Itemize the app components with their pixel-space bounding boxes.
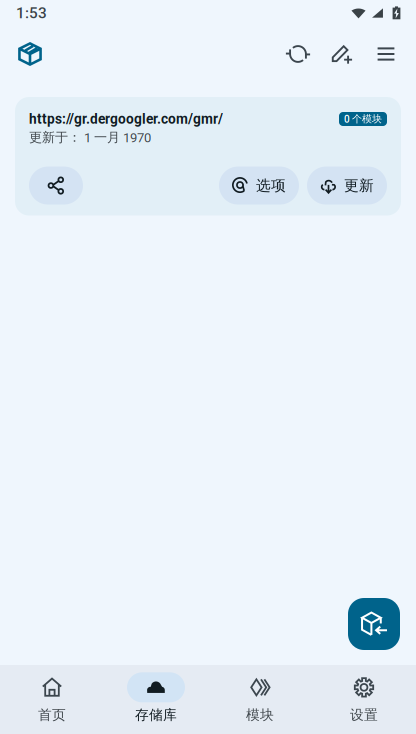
staticText: 存储库 — [135, 706, 177, 724]
staticText: 1:53 — [16, 4, 47, 22]
button[interactable]: 更新 — [307, 167, 387, 205]
button[interactable]: Refresh — [276, 32, 320, 76]
button[interactable]: 设置 — [312, 663, 416, 734]
staticText: 模块 — [246, 706, 274, 724]
button[interactable]: 首页 — [0, 663, 104, 734]
button[interactable]: Share — [29, 167, 83, 205]
staticText: https://gr.dergoogler.com/gmr/ — [29, 111, 223, 127]
button[interactable]: Import module — [348, 598, 400, 650]
button[interactable]: 选项 — [219, 167, 299, 205]
button[interactable]: App logo — [8, 32, 52, 76]
button[interactable]: Menu — [364, 32, 408, 76]
button[interactable]: 存储库 — [104, 663, 208, 734]
button[interactable]: 模块 — [208, 663, 312, 734]
staticText: 选项 — [256, 176, 286, 195]
staticText: 0 个模块 — [344, 113, 382, 125]
staticText: 更新于： 1 一月 1970 — [29, 129, 151, 146]
staticText: 首页 — [38, 706, 66, 724]
staticText: 设置 — [350, 706, 378, 724]
staticText: 更新 — [344, 176, 374, 195]
button[interactable]: Add module — [320, 32, 364, 76]
